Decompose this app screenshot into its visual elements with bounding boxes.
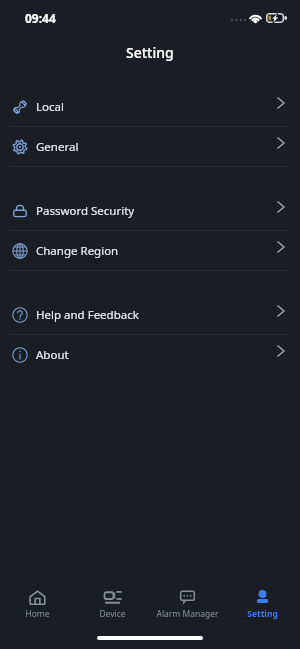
staticText: Home bbox=[25, 608, 50, 620]
button[interactable]: Setting bbox=[225, 582, 300, 620]
button[interactable]: Device bbox=[75, 582, 150, 620]
button[interactable]: Change Region bbox=[0, 231, 300, 271]
staticText: Change Region bbox=[36, 243, 119, 259]
staticText: Password Security bbox=[36, 203, 135, 219]
button[interactable]: Home bbox=[0, 582, 75, 620]
staticText: About bbox=[36, 347, 69, 363]
button[interactable]: Help and Feedback bbox=[0, 295, 300, 335]
button[interactable]: General bbox=[0, 127, 300, 167]
staticText: Local bbox=[36, 99, 64, 115]
button[interactable]: Password Security bbox=[0, 191, 300, 231]
button[interactable]: Alarm Manager bbox=[150, 582, 225, 620]
staticText: Help and Feedback bbox=[36, 307, 139, 323]
button[interactable]: About bbox=[0, 335, 300, 375]
staticText: Device bbox=[99, 608, 126, 620]
staticText: Alarm Manager bbox=[156, 608, 219, 620]
button[interactable]: Local bbox=[0, 87, 300, 127]
staticText: Setting bbox=[126, 43, 174, 62]
staticText: 09:44 bbox=[25, 10, 56, 26]
staticText: Setting bbox=[247, 608, 278, 620]
staticText: General bbox=[36, 139, 79, 155]
